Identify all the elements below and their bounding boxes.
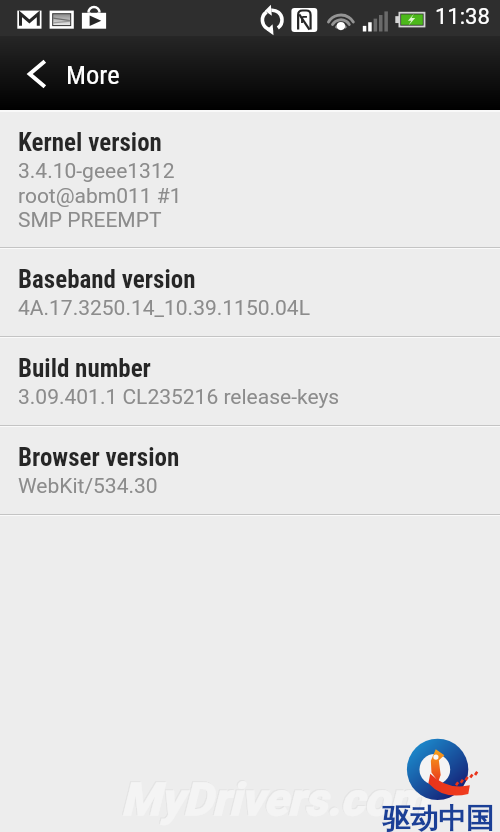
staticText: Baseband version xyxy=(18,265,196,294)
staticText: MyDrivers.com xyxy=(120,772,428,825)
staticText: 4A.17.3250.14_10.39.1150.04L xyxy=(18,296,310,321)
staticText: Build number xyxy=(18,354,151,383)
staticText: More xyxy=(66,59,120,90)
staticText: WebKit/534.30 xyxy=(18,474,158,499)
staticText: 3.09.401.1 CL235216 release-keys xyxy=(18,385,340,410)
staticText: 11:38 xyxy=(435,4,490,30)
button[interactable]: Navigate up xyxy=(0,36,500,110)
staticText: 驱动中国 xyxy=(382,801,494,832)
button[interactable]: Browser version xyxy=(0,427,500,514)
button[interactable]: Build number xyxy=(0,338,500,425)
staticText: Kernel version xyxy=(18,128,162,157)
staticText: MyDrivers.com xyxy=(121,773,429,826)
staticText: Browser version xyxy=(18,443,180,472)
button[interactable]: Kernel version xyxy=(0,112,500,247)
button[interactable]: Baseband version xyxy=(0,249,500,336)
staticText: 3.4.10-geee1312 root@abm011 #1 SMP PREEM… xyxy=(18,159,182,232)
other: Navigate up xyxy=(0,36,66,110)
